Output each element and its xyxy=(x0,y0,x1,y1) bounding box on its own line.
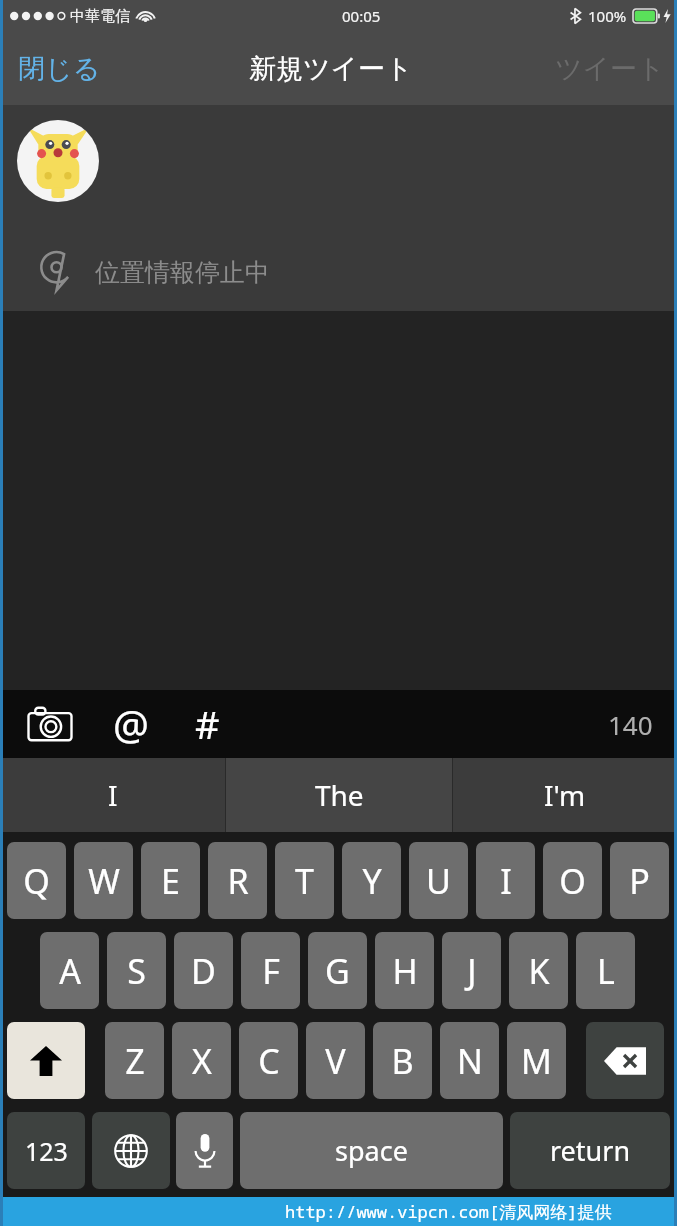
button[interactable]: N xyxy=(440,1022,499,1099)
staticText: E xyxy=(161,858,180,904)
button[interactable]: return xyxy=(510,1112,670,1189)
button[interactable]: G xyxy=(308,932,367,1009)
button[interactable]: 位置情報停止中 xyxy=(0,233,677,311)
staticText: F xyxy=(262,948,280,994)
button[interactable]: W xyxy=(74,842,133,919)
button[interactable]: Dictation xyxy=(176,1112,233,1189)
staticText: P xyxy=(629,858,650,904)
button[interactable]: V xyxy=(306,1022,365,1099)
staticText: X xyxy=(192,1038,212,1084)
button[interactable]: I xyxy=(0,758,225,832)
staticText: return xyxy=(550,1132,631,1169)
staticText: Y xyxy=(362,858,382,904)
button[interactable]: M xyxy=(507,1022,566,1099)
button[interactable]: R xyxy=(208,842,267,919)
button[interactable]: F xyxy=(241,932,300,1009)
staticText: Q xyxy=(23,858,50,904)
staticText: K xyxy=(528,948,550,994)
button[interactable]: Shift xyxy=(7,1022,85,1099)
button[interactable]: Mention xyxy=(104,697,158,751)
button[interactable]: Backspace xyxy=(586,1022,664,1099)
button[interactable]: K xyxy=(509,932,568,1009)
staticText: I'm xyxy=(544,776,586,814)
staticText: C xyxy=(258,1038,280,1084)
button[interactable]: J xyxy=(442,932,501,1009)
button[interactable]: X xyxy=(172,1022,231,1099)
button[interactable]: Q xyxy=(7,842,66,919)
staticText: 位置情報停止中 xyxy=(95,257,270,288)
staticText: space xyxy=(335,1132,408,1169)
staticText: 新規ツイート xyxy=(249,52,413,86)
staticText: A xyxy=(59,948,81,994)
staticText: B xyxy=(391,1038,414,1084)
button[interactable]: H xyxy=(375,932,434,1009)
staticText: 00:05 xyxy=(342,6,381,26)
staticText: @ xyxy=(113,697,149,751)
staticText: I xyxy=(500,858,512,904)
button[interactable]: 閉じる xyxy=(0,42,119,96)
staticText: N xyxy=(457,1038,483,1084)
staticText: 100% xyxy=(588,6,627,26)
button[interactable]: I xyxy=(476,842,535,919)
button[interactable]: I'm xyxy=(453,758,677,832)
staticText: 123 xyxy=(25,1134,68,1168)
button[interactable]: U xyxy=(409,842,468,919)
staticText: M xyxy=(521,1038,552,1084)
button[interactable]: C xyxy=(239,1022,298,1099)
staticText: J xyxy=(467,948,477,994)
button[interactable]: O xyxy=(543,842,602,919)
staticText: Z xyxy=(125,1038,145,1084)
staticText: L xyxy=(597,948,615,994)
staticText: http://www.vipcn.com[清风网络]提供 xyxy=(285,1200,612,1223)
staticText: G xyxy=(325,948,350,994)
button[interactable]: Z xyxy=(105,1022,164,1099)
button[interactable]: Add photo xyxy=(22,698,78,750)
staticText: O xyxy=(559,858,586,904)
button[interactable]: Y xyxy=(342,842,401,919)
staticText: The xyxy=(315,776,364,814)
staticText: U xyxy=(426,858,451,904)
button[interactable]: The xyxy=(226,758,452,832)
button[interactable]: Profile photo xyxy=(17,120,99,202)
button[interactable]: P xyxy=(610,842,669,919)
staticText: 中華電信 xyxy=(70,7,130,26)
staticText: ツイート xyxy=(555,52,665,86)
button[interactable]: 123 xyxy=(7,1112,85,1189)
button[interactable]: S xyxy=(107,932,166,1009)
staticText: R xyxy=(227,858,249,904)
button[interactable]: B xyxy=(373,1022,432,1099)
button[interactable]: ツイート xyxy=(543,42,677,96)
staticText: I xyxy=(108,776,118,814)
button[interactable]: D xyxy=(174,932,233,1009)
staticText: V xyxy=(325,1038,346,1084)
staticText: D xyxy=(191,948,216,994)
button[interactable]: Change keyboard xyxy=(92,1112,170,1189)
button[interactable]: Hashtag xyxy=(182,697,232,751)
staticText: T xyxy=(295,858,314,904)
staticText: 閉じる xyxy=(18,52,101,86)
button[interactable]: T xyxy=(275,842,334,919)
staticText: W xyxy=(88,858,120,904)
button[interactable]: E xyxy=(141,842,200,919)
staticText: # xyxy=(195,698,220,750)
button[interactable]: space xyxy=(240,1112,503,1189)
staticText: H xyxy=(392,948,418,994)
staticText: 140 xyxy=(608,707,653,742)
staticText: S xyxy=(127,948,146,994)
button[interactable]: A xyxy=(40,932,99,1009)
button[interactable]: L xyxy=(576,932,635,1009)
